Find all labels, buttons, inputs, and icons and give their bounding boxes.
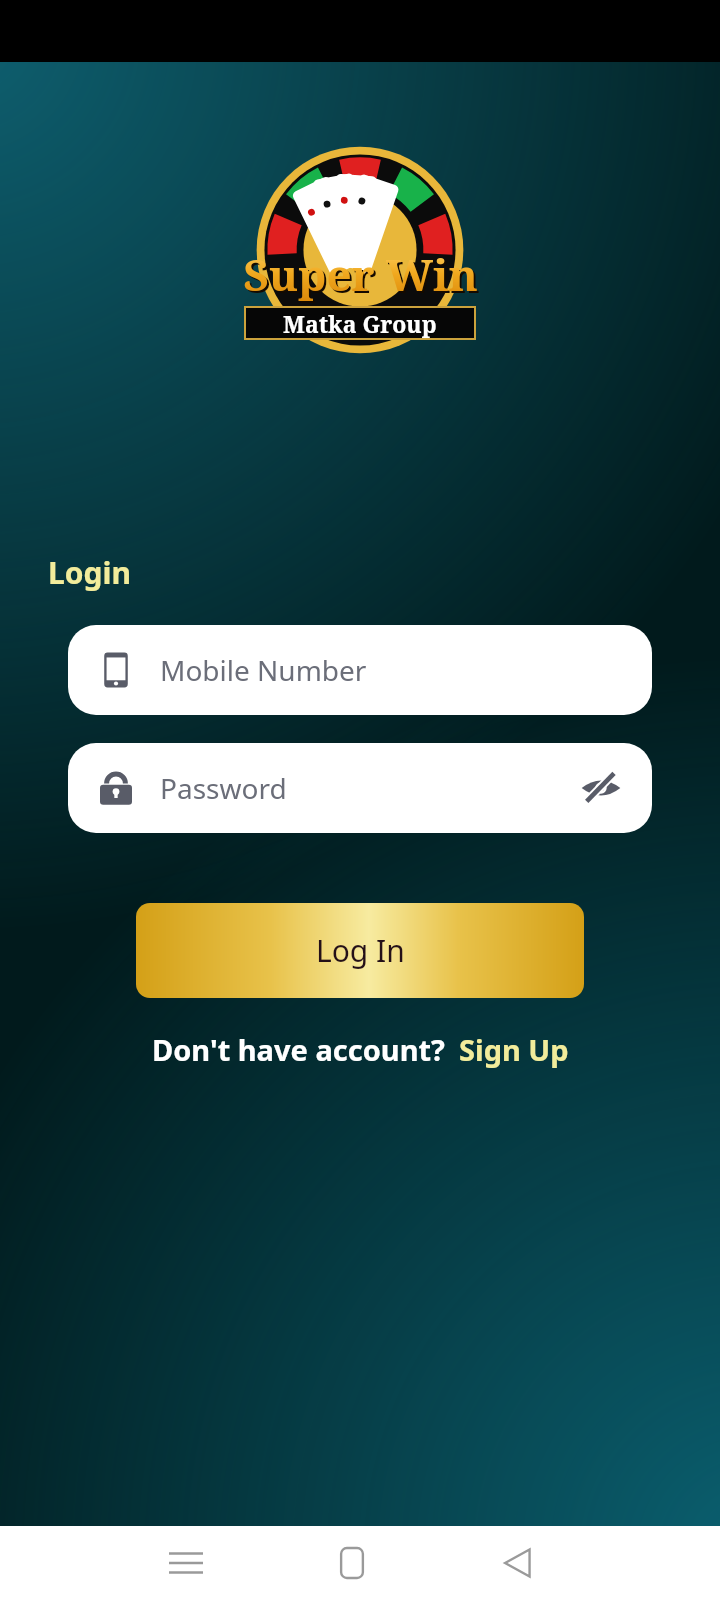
button[interactable]: Back	[482, 1527, 554, 1599]
staticText: Sign Up	[459, 1030, 569, 1069]
staticText: Log In	[316, 930, 405, 971]
button[interactable]: Sign Up	[459, 1030, 569, 1069]
button[interactable]: Show password	[576, 763, 626, 813]
button[interactable]: Mobile Number	[68, 625, 652, 715]
button[interactable]: Password	[68, 743, 652, 833]
staticText: Mobile Number	[160, 651, 367, 689]
button[interactable]: Recent apps	[150, 1527, 222, 1599]
staticText: Don't have account?	[152, 1030, 445, 1069]
staticText: Matka Group	[283, 308, 437, 338]
staticText: Login	[48, 552, 131, 593]
staticText: Password	[160, 769, 287, 807]
staticText: Super Win	[243, 244, 478, 304]
button[interactable]: Log In	[136, 903, 584, 998]
staticText: Super Win	[245, 246, 480, 306]
button[interactable]: Home	[316, 1527, 388, 1599]
